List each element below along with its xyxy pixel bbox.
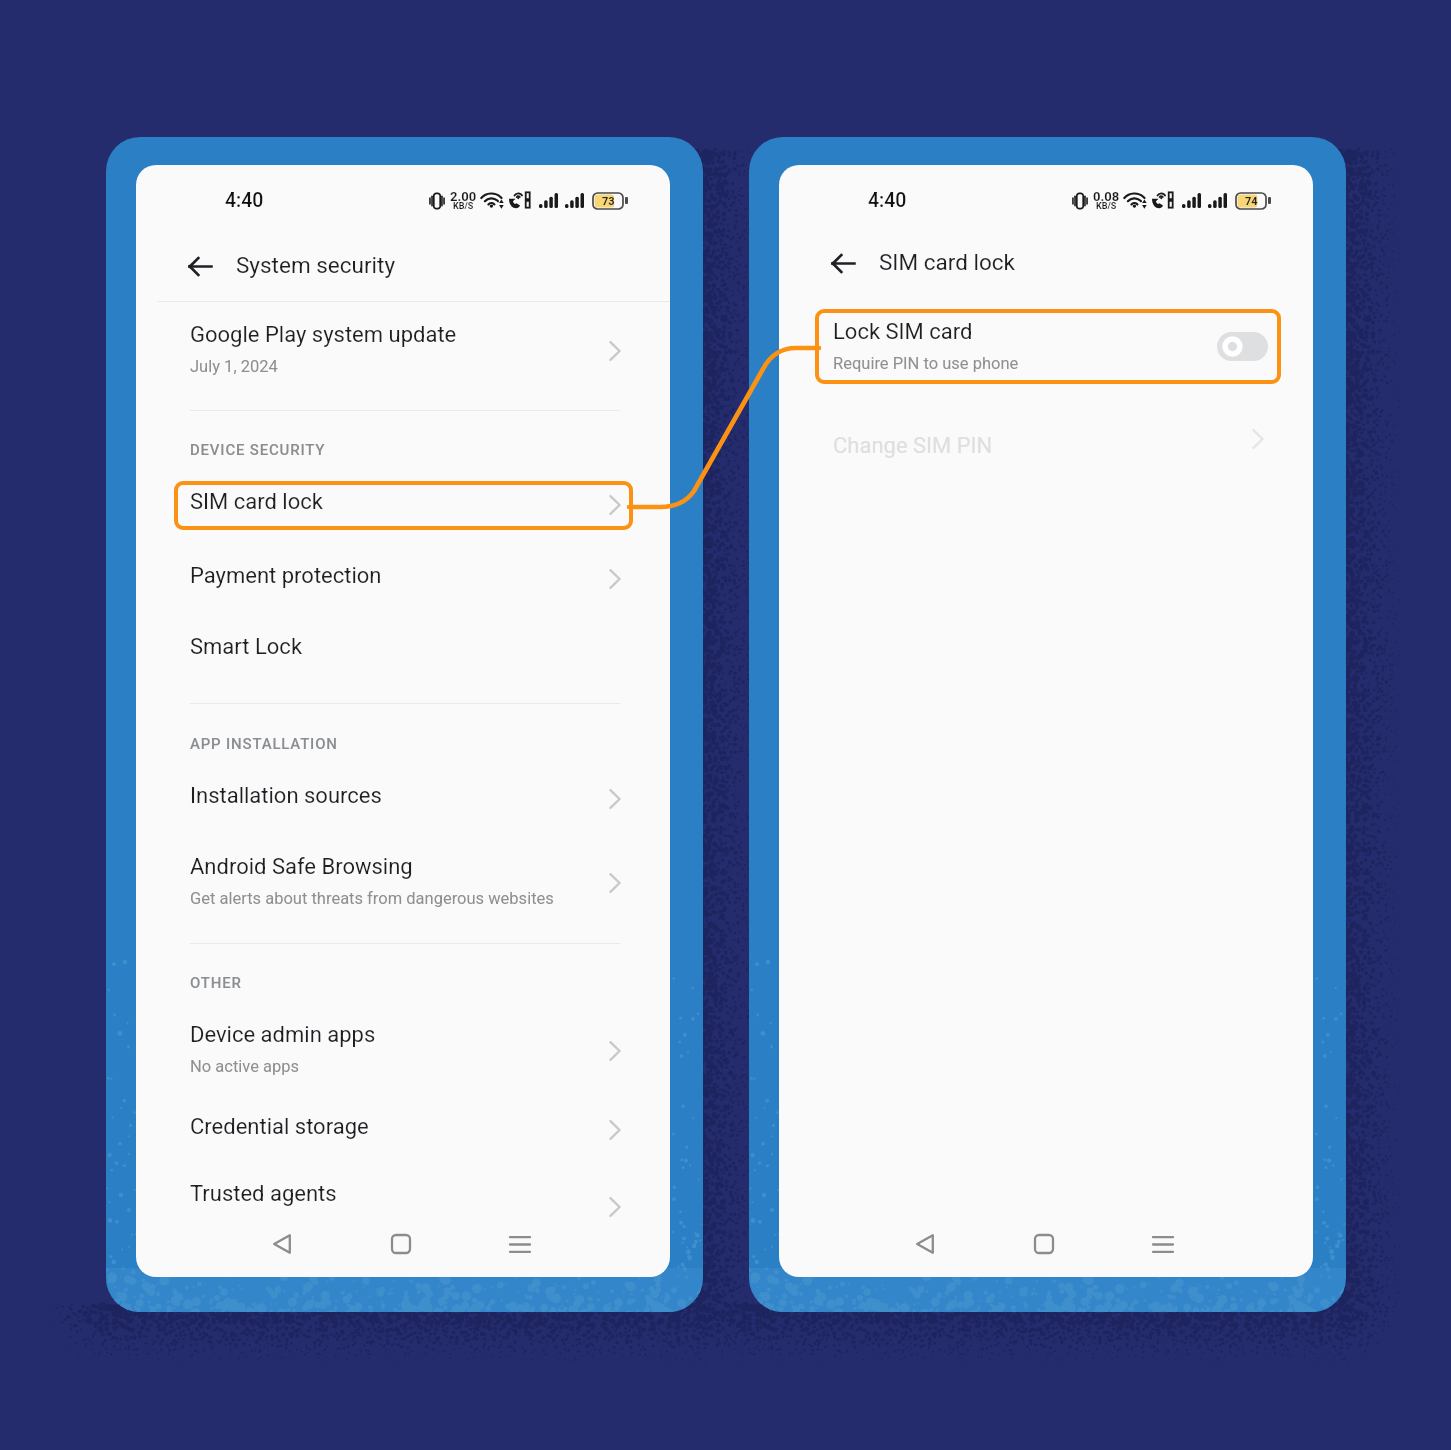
button[interactable]: Google Play system update xyxy=(136,307,670,393)
staticText: Change SIM PIN xyxy=(833,433,993,459)
button[interactable]: Android Safe Browsing xyxy=(136,839,670,925)
staticText: 4:40 xyxy=(868,189,907,212)
staticText: Android Safe Browsing xyxy=(190,854,413,880)
staticText: Installation sources xyxy=(190,783,382,809)
staticText: OTHER xyxy=(190,974,242,992)
staticText: KB/S xyxy=(453,201,474,212)
staticText: Payment protection xyxy=(190,563,382,589)
staticText: System security xyxy=(236,252,396,278)
button[interactable]: Home xyxy=(1020,1220,1068,1268)
staticText: Lock SIM card xyxy=(833,319,973,345)
button[interactable]: Trusted agents xyxy=(136,1170,670,1224)
button[interactable]: Smart Lock xyxy=(136,623,670,677)
staticText: Require PIN to use phone xyxy=(833,354,1019,373)
button[interactable]: Payment protection xyxy=(136,552,670,606)
button[interactable]: Toggle Lock SIM card xyxy=(1217,332,1268,361)
button[interactable]: Device admin apps xyxy=(136,1007,670,1093)
staticText: KB/S xyxy=(1096,201,1117,212)
staticText: SIM card lock xyxy=(879,249,1015,275)
button[interactable]: Installation sources xyxy=(136,772,670,826)
staticText: 4:40 xyxy=(225,189,264,212)
staticText: Get alerts about threats from dangerous … xyxy=(190,889,554,908)
staticText: Device admin apps xyxy=(190,1022,376,1048)
button[interactable]: Lock SIM card xyxy=(779,309,1313,384)
button[interactable]: Credential storage xyxy=(136,1103,670,1157)
staticText: Credential storage xyxy=(190,1114,369,1140)
staticText: No active apps xyxy=(190,1057,300,1076)
button[interactable]: Back xyxy=(901,1220,949,1268)
staticText: Trusted agents xyxy=(190,1181,337,1207)
staticText: 2.00 xyxy=(450,189,477,204)
button[interactable]: SIM card lock xyxy=(136,478,670,532)
button[interactable]: Home xyxy=(377,1220,425,1268)
staticText: Google Play system update xyxy=(190,322,457,348)
staticText: July 1, 2024 xyxy=(190,357,278,376)
button[interactable]: Change SIM PIN xyxy=(779,422,1313,476)
staticText: 73 xyxy=(602,195,615,208)
button[interactable]: Back xyxy=(176,242,224,290)
staticText: 0.08 xyxy=(1093,189,1120,204)
button[interactable]: Back xyxy=(258,1220,306,1268)
button[interactable]: Recent apps xyxy=(496,1220,544,1268)
staticText: APP INSTALLATION xyxy=(190,735,338,753)
button[interactable]: Recent apps xyxy=(1139,1220,1187,1268)
staticText: SIM card lock xyxy=(190,489,323,515)
button[interactable]: Back xyxy=(819,239,867,287)
staticText: Smart Lock xyxy=(190,634,303,660)
staticText: 74 xyxy=(1245,195,1258,208)
staticText: DEVICE SECURITY xyxy=(190,441,326,459)
